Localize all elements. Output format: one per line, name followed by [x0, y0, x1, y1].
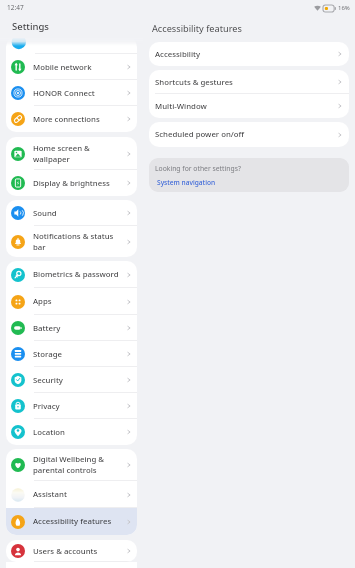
staticText: Home screen & wallpaper — [33, 143, 127, 165]
button[interactable]: Accessibility features — [6, 508, 137, 535]
button[interactable]: Location — [6, 419, 137, 445]
button[interactable]: Biometrics & password — [6, 261, 137, 288]
staticText: Battery — [33, 323, 127, 334]
staticText: Settings — [12, 20, 49, 33]
staticText: 12:47 — [7, 3, 24, 12]
staticText: 16% — [338, 4, 350, 12]
staticText: Display & brightness — [33, 178, 127, 189]
button[interactable]: Security — [6, 367, 137, 393]
staticText: More connections — [33, 114, 127, 125]
staticText: Shortcuts & gestures — [155, 77, 338, 88]
staticText: HONOR Connect — [33, 88, 127, 99]
button[interactable]: More connections — [6, 106, 137, 132]
staticText: Scheduled power on/off — [155, 129, 338, 140]
button[interactable]: Accessibility — [149, 42, 349, 66]
staticText: Users & accounts — [33, 546, 127, 557]
button[interactable]: Mobile network — [6, 54, 137, 80]
staticText: Apps — [33, 296, 127, 307]
button[interactable]: Assistant — [6, 481, 137, 508]
button[interactable]: Scheduled power on/off — [149, 122, 349, 147]
button[interactable]: Shortcuts & gestures — [149, 70, 349, 94]
staticText: Assistant — [33, 489, 127, 500]
button[interactable]: Multi-Window — [149, 94, 349, 118]
button[interactable]: Privacy — [6, 393, 137, 419]
staticText: Sound — [33, 208, 127, 219]
staticText: Security — [33, 375, 127, 386]
staticText: Biometrics & password — [33, 269, 127, 280]
staticText: Looking for other settings? — [155, 164, 241, 173]
staticText: Accessibility — [155, 49, 338, 60]
button[interactable]: Notifications & status bar — [6, 226, 137, 257]
staticText: Location — [33, 427, 127, 438]
staticText: Multi-Window — [155, 101, 338, 112]
staticText: Storage — [33, 349, 127, 360]
button[interactable]: Home screen & wallpaper — [6, 137, 137, 170]
button[interactable]: Display & brightness — [6, 170, 137, 196]
button[interactable]: Users & accounts — [6, 540, 137, 562]
button[interactable]: Storage — [6, 341, 137, 367]
button[interactable]: Battery — [6, 315, 137, 341]
staticText: Mobile network — [33, 62, 127, 73]
staticText: System navigation — [157, 178, 216, 187]
button[interactable]: Sound — [6, 200, 137, 226]
button[interactable]: HONOR Connect — [6, 80, 137, 106]
staticText: Notifications & status bar — [33, 231, 127, 253]
button[interactable]: Digital Wellbeing & parental controls — [6, 449, 137, 481]
staticText: Privacy — [33, 401, 127, 412]
staticText: Accessibility features — [152, 22, 242, 35]
staticText: Digital Wellbeing & parental controls — [33, 454, 127, 476]
button[interactable]: Apps — [6, 288, 137, 315]
staticText: Accessibility features — [33, 516, 127, 527]
button[interactable]: System navigation — [157, 178, 216, 187]
